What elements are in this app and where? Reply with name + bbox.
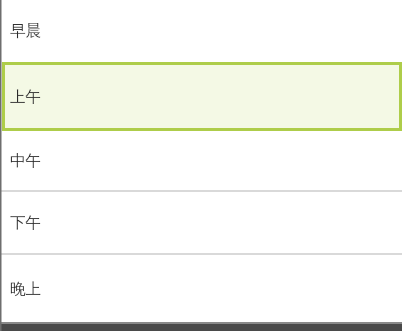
button[interactable]: 下午 xyxy=(0,192,402,253)
button[interactable]: 中午 xyxy=(0,131,402,190)
staticText: 晚上 xyxy=(10,279,41,299)
staticText: 下午 xyxy=(10,213,41,233)
staticText: 中午 xyxy=(10,151,41,171)
staticText: 早晨 xyxy=(10,21,41,41)
button[interactable]: 晚上 xyxy=(0,255,402,322)
button[interactable]: 早晨 xyxy=(0,0,402,62)
button[interactable]: 上午 xyxy=(0,62,402,131)
staticText: 上午 xyxy=(10,87,41,107)
